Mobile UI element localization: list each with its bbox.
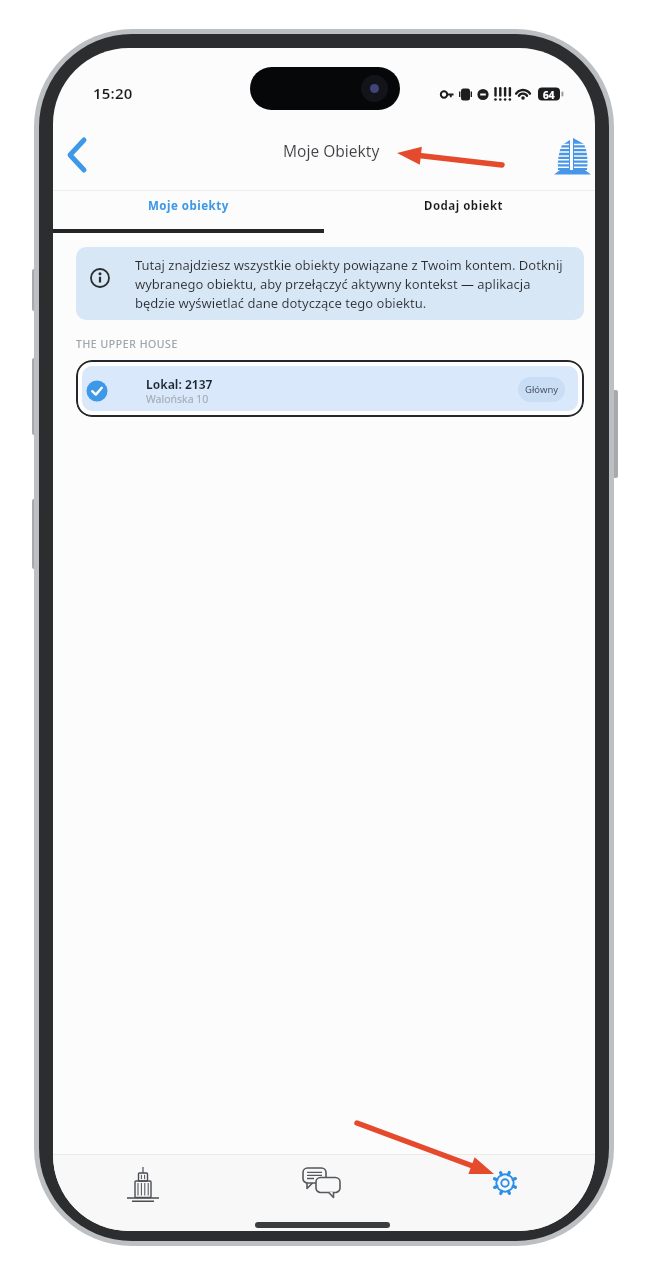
staticText: 15:20 — [93, 83, 133, 103]
button[interactable]: Moje obiekty — [53, 187, 324, 225]
staticText: Lokal: 2137 — [146, 376, 213, 392]
staticText: 64 — [543, 88, 555, 102]
staticText: Moje obiekty — [148, 198, 229, 214]
button[interactable] — [252, 1155, 392, 1217]
staticText: Moje Obiekty — [283, 140, 380, 161]
button[interactable]: Dodaj obiekt — [328, 187, 595, 225]
button[interactable]: Lokal: 2137 — [76, 360, 584, 417]
button[interactable] — [551, 134, 595, 180]
staticText: Główny — [525, 383, 559, 396]
staticText: Walońska 10 — [146, 392, 209, 406]
button[interactable] — [55, 132, 101, 178]
staticText: THE UPPER HOUSE — [76, 337, 178, 351]
staticText: Tutaj znajdziesz wszystkie obiekty powią… — [135, 256, 563, 312]
button[interactable] — [435, 1152, 575, 1214]
button[interactable] — [73, 1155, 213, 1217]
staticText: Dodaj obiekt — [424, 198, 504, 214]
